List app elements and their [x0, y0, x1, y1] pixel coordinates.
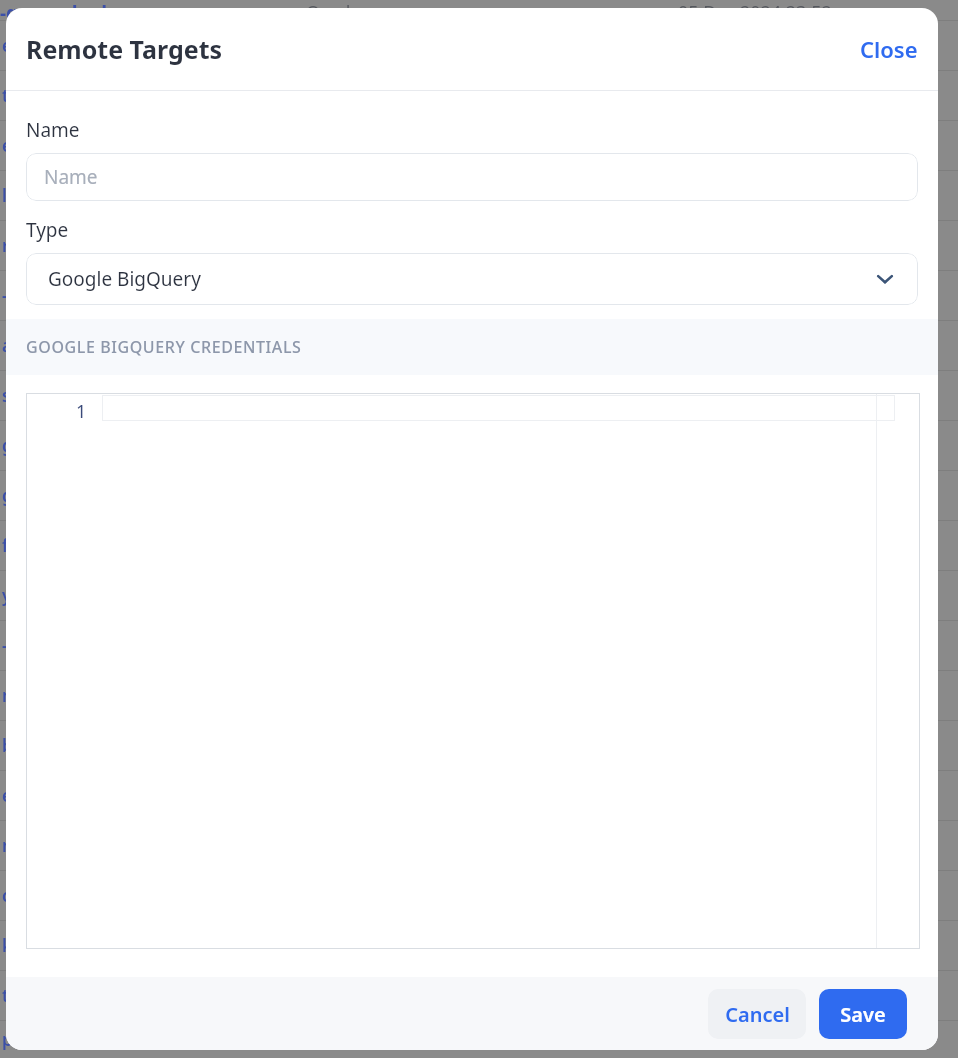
staticText: Google BigQuery	[48, 266, 201, 292]
staticText: 05 Dec 2024 23:52	[678, 0, 832, 20]
staticText: Name	[44, 164, 98, 190]
staticText: g	[2, 484, 13, 507]
staticText: k	[2, 934, 12, 957]
staticText: b	[2, 734, 13, 757]
staticText: Name	[26, 117, 80, 143]
button[interactable]: 1	[26, 393, 920, 949]
staticText: m	[2, 684, 19, 707]
staticText: Oracle	[306, 0, 361, 20]
staticText: ti	[2, 84, 14, 107]
staticText: Save	[840, 1001, 886, 1028]
button[interactable]: Save	[819, 989, 907, 1039]
staticText: Close	[860, 34, 918, 64]
button[interactable]: Google BigQuery	[26, 253, 918, 305]
staticText: c	[2, 884, 11, 907]
staticText: t	[2, 984, 9, 1007]
button[interactable]: Close	[852, 28, 926, 70]
staticText: e	[2, 134, 12, 157]
button[interactable]: Name	[26, 153, 918, 201]
other: Expand type options	[876, 270, 894, 288]
staticText: g	[2, 434, 13, 457]
staticText: f	[2, 534, 9, 557]
staticText: ll	[2, 184, 12, 207]
staticText: -i	[2, 284, 13, 307]
staticText: Cancel	[725, 1001, 790, 1028]
staticText: s	[2, 384, 11, 407]
staticText: r	[2, 234, 10, 257]
staticText: e	[2, 34, 12, 57]
staticText: e	[2, 784, 12, 807]
staticText: y	[2, 584, 12, 607]
button[interactable]: Cancel	[708, 989, 806, 1039]
staticText: -genuade-dev	[0, 0, 129, 20]
staticText: p	[2, 1028, 13, 1051]
staticText: n	[2, 834, 13, 857]
staticText: 1	[76, 399, 87, 424]
staticText: GOOGLE BIGQUERY CREDENTIALS	[26, 336, 302, 358]
staticText: Type	[26, 217, 69, 243]
staticText: af	[2, 334, 19, 357]
staticText: Remote Targets	[26, 32, 223, 66]
staticText: -i	[2, 634, 13, 657]
